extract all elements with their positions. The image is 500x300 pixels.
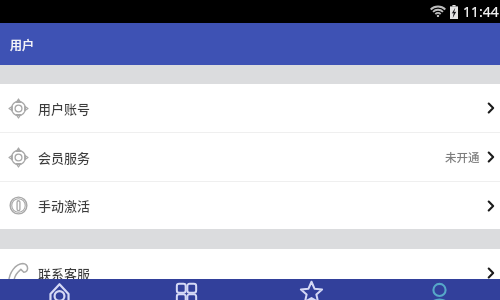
button[interactable]: Apps xyxy=(125,279,250,300)
staticText: 11:44 xyxy=(463,2,499,21)
staticText: 用户账号 xyxy=(38,99,91,118)
button[interactable]: 会员服务 xyxy=(0,133,500,181)
staticText: 未开通 xyxy=(445,149,480,166)
button[interactable]: Favorites xyxy=(250,279,375,300)
button[interactable]: 用户账号 xyxy=(0,84,500,132)
staticText: 会员服务 xyxy=(38,148,91,167)
staticText: 用户 xyxy=(10,36,35,53)
staticText: 联系客服 xyxy=(38,264,91,283)
button[interactable]: 联系客服 xyxy=(0,249,500,297)
button[interactable]: 手动激活 xyxy=(0,182,500,229)
button[interactable]: Home xyxy=(0,279,125,300)
button[interactable]: Profile xyxy=(375,279,500,300)
staticText: 手动激活 xyxy=(38,196,91,215)
